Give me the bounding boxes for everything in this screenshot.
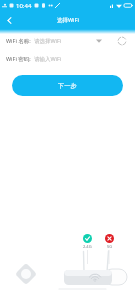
staticText: WiFi 名称: bbox=[6, 37, 31, 45]
button[interactable]: 下一步 bbox=[12, 75, 123, 96]
button[interactable]: Back bbox=[1, 12, 17, 28]
staticText: 请输入WiFi bbox=[34, 55, 62, 63]
button[interactable]: Choose WiFi bbox=[93, 36, 104, 46]
staticText: 5G bbox=[107, 244, 113, 249]
staticText: 选择WiFi bbox=[57, 16, 79, 24]
staticText: WiFi 密码: bbox=[6, 55, 31, 63]
staticText: 10:44 bbox=[16, 2, 32, 10]
staticText: 请选择WiFi bbox=[34, 37, 62, 45]
button[interactable]: Refresh bbox=[116, 36, 128, 46]
staticText: 下一步 bbox=[58, 82, 77, 90]
staticText: 2.4G bbox=[83, 244, 92, 249]
